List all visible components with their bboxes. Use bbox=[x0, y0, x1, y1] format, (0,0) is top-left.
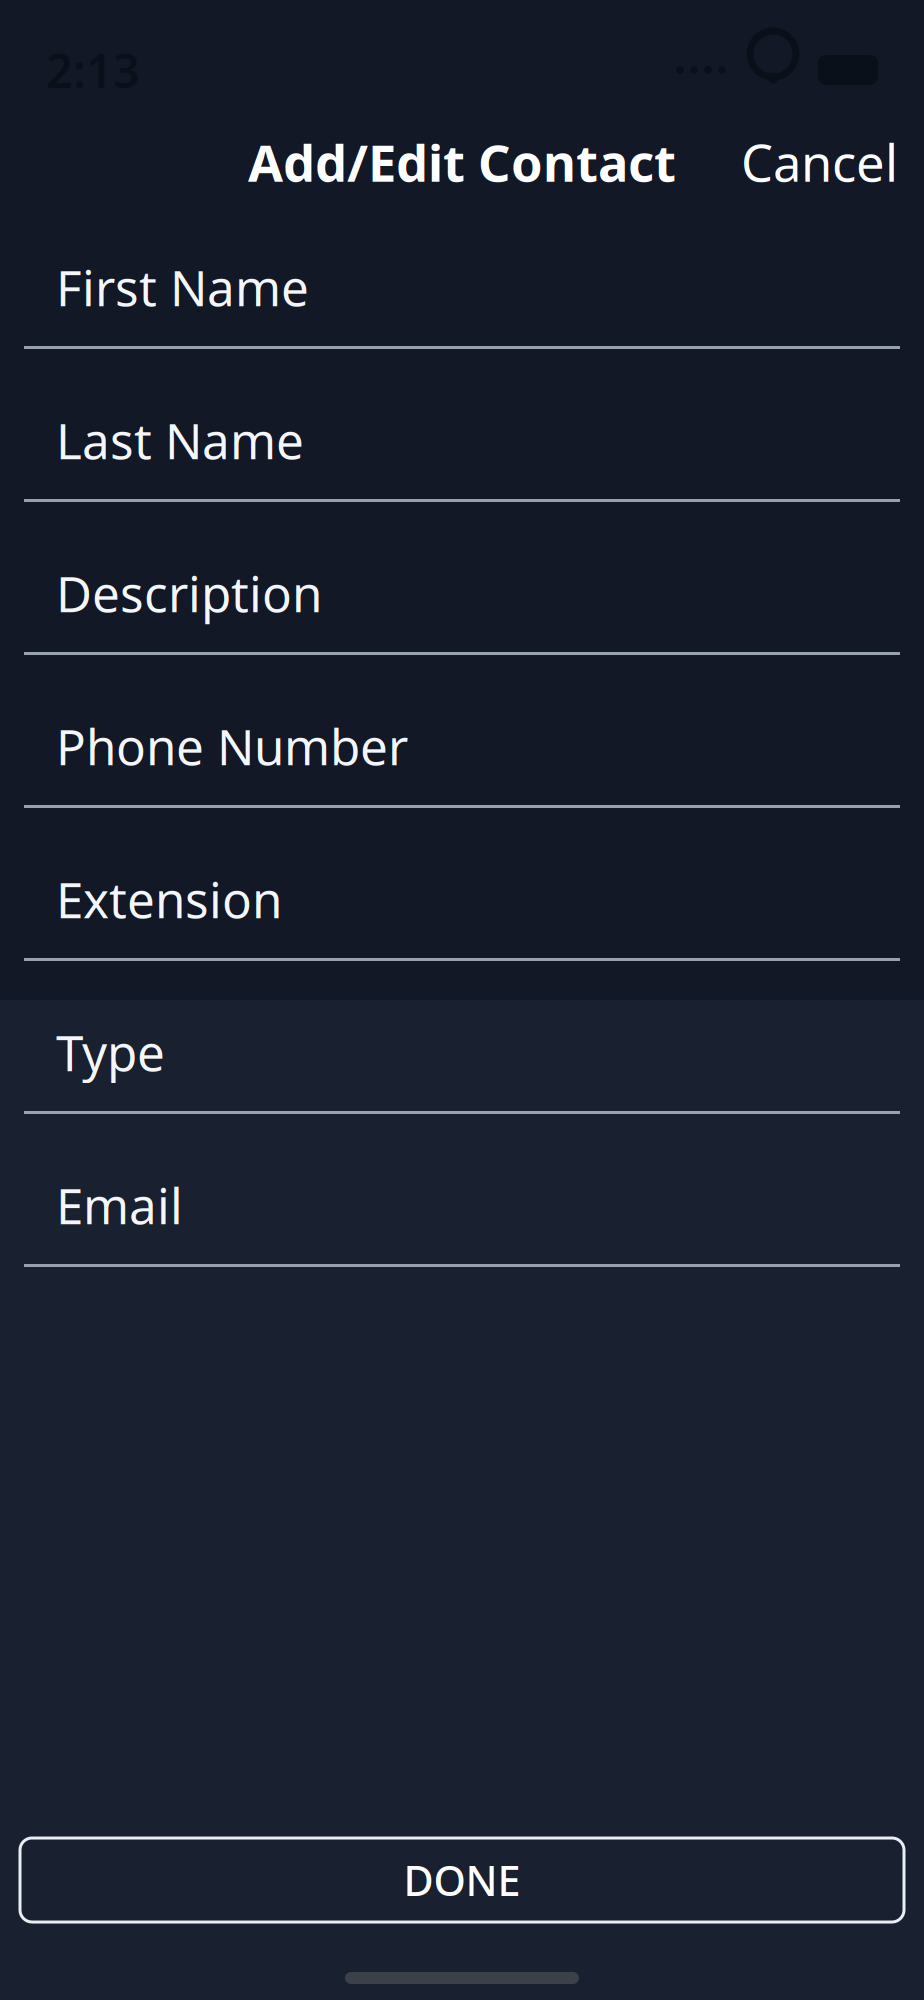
staticText: Email bbox=[56, 1172, 183, 1238]
staticText: Description bbox=[56, 560, 322, 626]
staticText: Type bbox=[56, 1019, 165, 1085]
staticText: Add/Edit Contact bbox=[248, 128, 676, 196]
button[interactable]: First Name bbox=[0, 228, 924, 381]
button[interactable]: Cancel bbox=[725, 116, 914, 208]
staticText: 2:13 bbox=[46, 39, 140, 101]
staticText: First Name bbox=[56, 254, 309, 320]
button[interactable]: Last Name bbox=[0, 381, 924, 534]
button[interactable]: DONE bbox=[20, 1838, 904, 1922]
button[interactable]: Type bbox=[0, 993, 924, 1146]
staticText: Extension bbox=[56, 866, 282, 932]
staticText: Cancel bbox=[741, 128, 898, 196]
button[interactable]: Phone Number bbox=[0, 687, 924, 840]
button[interactable]: Description bbox=[0, 534, 924, 687]
staticText: Last Name bbox=[56, 407, 304, 473]
staticText: Phone Number bbox=[56, 713, 408, 779]
staticText: DONE bbox=[403, 1853, 520, 1907]
button[interactable]: Extension bbox=[0, 840, 924, 993]
button[interactable]: Email bbox=[0, 1146, 924, 1299]
